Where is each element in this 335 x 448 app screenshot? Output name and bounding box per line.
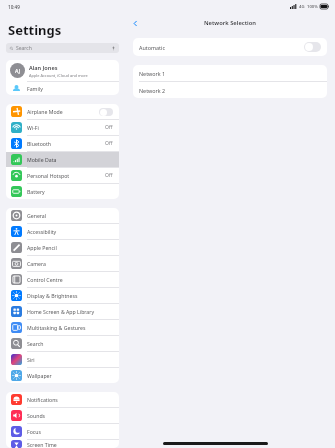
button[interactable]: Sounds xyxy=(6,408,119,423)
staticText: Off xyxy=(105,172,113,179)
staticText: Home Screen & App Library xyxy=(27,308,95,315)
button[interactable]: Focus xyxy=(6,424,119,439)
button[interactable]: Control Centre xyxy=(6,272,119,287)
button[interactable]: Automatic toggle xyxy=(304,42,321,52)
staticText: Wallpaper xyxy=(27,372,52,379)
staticText: Screen Time xyxy=(27,441,57,448)
button[interactable]: Multitasking & Gestures xyxy=(6,320,119,335)
staticText: Apple Account, iCloud and more xyxy=(29,73,88,78)
staticText: Sounds xyxy=(27,412,46,419)
staticText: General xyxy=(27,212,47,219)
staticText: Multitasking & Gestures xyxy=(27,324,86,331)
staticText: Siri xyxy=(27,356,35,363)
staticText: Automatic xyxy=(139,44,165,51)
button[interactable]: Wallpaper xyxy=(6,368,119,383)
button[interactable]: Network 1 xyxy=(133,65,327,81)
staticText: 10:49 xyxy=(8,4,20,10)
button[interactable]: Camera xyxy=(6,256,119,271)
staticText: Search xyxy=(16,45,32,52)
staticText: Accessibility xyxy=(27,228,57,235)
staticText: Battery xyxy=(27,188,45,195)
button[interactable]: Wi-Fi xyxy=(6,120,119,135)
staticText: 4G xyxy=(299,4,305,10)
staticText: Off xyxy=(105,140,113,147)
staticText: Alan Jones xyxy=(29,64,58,72)
button[interactable]: Apple Pencil xyxy=(6,240,119,255)
button[interactable]: Search xyxy=(6,336,119,351)
staticText: Network 2 xyxy=(139,87,166,94)
button[interactable]: Display & Brightness xyxy=(6,288,119,303)
button[interactable]: Screen Time xyxy=(6,440,119,448)
staticText: Search xyxy=(27,340,44,347)
button[interactable]: Family xyxy=(6,82,119,95)
button[interactable]: AJ xyxy=(6,60,119,81)
staticText: Settings xyxy=(8,21,62,39)
button[interactable]: Siri xyxy=(6,352,119,367)
staticText: Family xyxy=(27,85,43,92)
button[interactable]: General xyxy=(6,208,119,223)
staticText: Bluetooth xyxy=(27,140,52,147)
button[interactable]: Notifications xyxy=(6,392,119,407)
button[interactable]: Back xyxy=(128,16,142,30)
button[interactable]: Home Screen & App Library xyxy=(6,304,119,319)
staticText: Mobile Data xyxy=(27,156,57,163)
button[interactable]: Accessibility xyxy=(6,224,119,239)
staticText: Airplane Mode xyxy=(27,108,63,115)
staticText: Network 1 xyxy=(139,70,166,77)
staticText: Off xyxy=(105,124,113,131)
staticText: 100% xyxy=(307,4,318,10)
button[interactable]: Bluetooth xyxy=(6,136,119,151)
button[interactable]: Automatic xyxy=(133,38,327,56)
button[interactable]: Battery xyxy=(6,184,119,199)
staticText: Camera xyxy=(27,260,46,267)
button[interactable]: Personal Hotspot xyxy=(6,168,119,183)
staticText: Apple Pencil xyxy=(27,244,57,251)
staticText: Control Centre xyxy=(27,276,63,283)
staticText: Network Selection xyxy=(204,19,256,27)
button[interactable]: Airplane Mode xyxy=(6,104,119,119)
staticText: Display & Brightness xyxy=(27,292,78,299)
button[interactable]: Mobile Data xyxy=(6,152,119,167)
staticText: Focus xyxy=(27,428,42,435)
button[interactable]: Airplane Mode toggle xyxy=(99,108,113,116)
staticText: AJ xyxy=(15,67,21,74)
staticText: Notifications xyxy=(27,396,58,403)
button[interactable]: Network 2 xyxy=(133,82,327,98)
staticText: Personal Hotspot xyxy=(27,172,70,179)
button[interactable]: Search xyxy=(6,43,119,53)
staticText: Wi-Fi xyxy=(27,124,39,131)
